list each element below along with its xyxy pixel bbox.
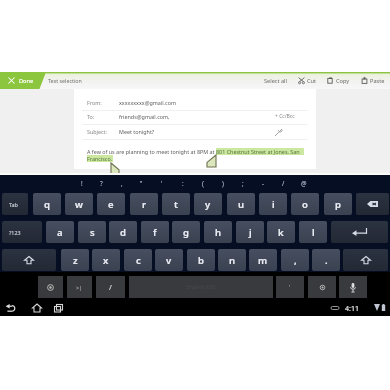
- staticText: ?: [100, 179, 103, 187]
- button[interactable]: k: [267, 221, 295, 243]
- staticText: y: [205, 198, 211, 211]
- button[interactable]: [38, 276, 63, 298]
- staticText: g: [183, 226, 189, 239]
- staticText: Subject:: [87, 128, 108, 135]
- staticText: xxxxxxxxx@gmail.com: [119, 99, 177, 106]
- button[interactable]: e: [97, 193, 125, 215]
- button[interactable]: Done: [0, 72, 44, 89]
- staticText: l: [312, 226, 315, 239]
- button[interactable]: ,: [281, 249, 309, 271]
- button[interactable]: y: [194, 193, 222, 215]
- button[interactable]: d: [109, 221, 137, 243]
- button[interactable]: o: [291, 193, 319, 215]
- button[interactable]: ?123: [2, 221, 42, 243]
- staticText: English (US): [187, 284, 215, 291]
- button[interactable]: [356, 193, 389, 215]
- button[interactable]: Copy: [325, 72, 352, 89]
- button[interactable]: a: [46, 221, 74, 243]
- staticText: Francisco.: [87, 155, 113, 162]
- button[interactable]: /: [96, 276, 125, 298]
- staticText: ,: [294, 254, 297, 267]
- button[interactable]: !: [77, 175, 86, 190]
- staticText: w: [75, 198, 83, 211]
- button[interactable]: t: [162, 193, 190, 215]
- button[interactable]: n: [218, 249, 246, 271]
- button[interactable]: b: [187, 249, 215, 271]
- staticText: a: [57, 226, 63, 239]
- staticText: Select all: [264, 77, 288, 85]
- button[interactable]: q: [33, 193, 61, 215]
- button[interactable]: .: [312, 249, 340, 271]
- button[interactable]: s: [78, 221, 106, 243]
- staticText: ': [289, 283, 291, 291]
- staticText: c: [136, 254, 141, 267]
- staticText: d: [120, 226, 126, 239]
- button[interactable]: [343, 249, 388, 271]
- staticText: Copy: [336, 77, 350, 85]
- button[interactable]: ’: [157, 175, 166, 190]
- staticText: k: [278, 226, 284, 239]
- button[interactable]: ,: [117, 175, 126, 190]
- staticText: A few of us are planning to meet tonight…: [87, 148, 216, 155]
- button[interactable]: u: [227, 193, 255, 215]
- button[interactable]: -: [258, 175, 267, 190]
- staticText: ): [222, 179, 224, 187]
- button[interactable]: f: [141, 221, 169, 243]
- button[interactable]: m: [249, 249, 277, 271]
- button[interactable]: Recent apps: [53, 303, 65, 314]
- staticText: (: [202, 179, 204, 187]
- button[interactable]: w: [65, 193, 93, 215]
- button[interactable]: z: [61, 249, 89, 271]
- button[interactable]: h: [204, 221, 232, 243]
- staticText: ,: [121, 179, 123, 187]
- staticText: 4:11: [345, 304, 359, 314]
- button[interactable]: [2, 249, 56, 271]
- button[interactable]: ): [218, 175, 227, 190]
- staticText: v: [166, 254, 172, 267]
- button[interactable]: c: [124, 249, 152, 271]
- button[interactable]: i: [259, 193, 287, 215]
- staticText: r: [142, 198, 147, 211]
- button[interactable]: Back: [4, 303, 19, 314]
- button[interactable]: @: [299, 175, 308, 190]
- staticText: u: [238, 198, 245, 211]
- staticText: ?123: [9, 229, 21, 236]
- staticText: From:: [87, 99, 102, 106]
- button[interactable]: ”: [137, 175, 146, 190]
- button[interactable]: ?: [97, 175, 106, 190]
- button[interactable]: [331, 221, 388, 243]
- button[interactable]: ;: [238, 175, 247, 190]
- button[interactable]: v: [155, 249, 183, 271]
- button[interactable]: Paste: [359, 72, 387, 89]
- button[interactable]: j: [236, 221, 264, 243]
- staticText: ”: [140, 179, 143, 187]
- staticText: + Cc/Bcc: [275, 113, 295, 120]
- button[interactable]: Cut: [296, 72, 319, 89]
- staticText: friends@gmail.com,: [119, 113, 170, 120]
- staticText: b: [198, 254, 204, 267]
- button[interactable]: r: [130, 193, 158, 215]
- button[interactable]: (: [198, 175, 207, 190]
- button[interactable]: :: [178, 175, 187, 190]
- button[interactable]: Select all: [261, 72, 291, 89]
- staticText: z: [73, 254, 78, 267]
- button[interactable]: Home: [31, 303, 43, 314]
- button[interactable]: >|: [67, 276, 92, 298]
- button[interactable]: l: [299, 221, 327, 243]
- staticText: n: [229, 254, 236, 267]
- button[interactable]: Tab: [2, 193, 28, 215]
- button[interactable]: p: [324, 193, 352, 215]
- staticText: .: [325, 254, 328, 267]
- button[interactable]: [308, 276, 336, 298]
- button[interactable]: /: [279, 175, 288, 190]
- staticText: /: [282, 179, 285, 187]
- button[interactable]: ': [276, 276, 304, 298]
- button[interactable]: [339, 276, 367, 298]
- staticText: :: [182, 179, 184, 187]
- staticText: j: [249, 226, 252, 239]
- button[interactable]: x: [92, 249, 120, 271]
- staticText: Cut: [307, 77, 317, 85]
- button[interactable]: g: [172, 221, 200, 243]
- staticText: Done: [19, 77, 34, 85]
